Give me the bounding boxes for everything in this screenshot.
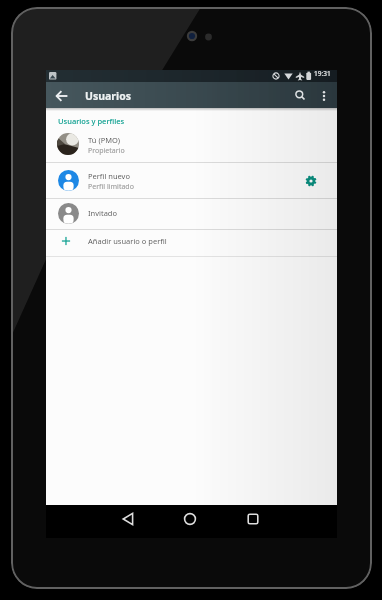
button[interactable]: Tú (PMO) bbox=[46, 126, 337, 162]
staticText: Usuarios y perfiles bbox=[58, 116, 125, 126]
button[interactable]: Perfil nuevo bbox=[46, 162, 337, 198]
button[interactable] bbox=[50, 84, 74, 108]
staticText: 19:31 bbox=[314, 69, 331, 78]
staticText: Perfil limitado bbox=[88, 182, 134, 192]
staticText: Invitado bbox=[88, 208, 117, 218]
staticText: Tú (PMO) bbox=[88, 135, 121, 145]
staticText: Perfil nuevo bbox=[88, 171, 130, 181]
button[interactable] bbox=[177, 506, 203, 532]
button[interactable]: Añadir usuario o perfil bbox=[46, 230, 337, 257]
staticText: Añadir usuario o perfil bbox=[88, 236, 167, 246]
staticText: Propietario bbox=[88, 146, 125, 156]
button[interactable] bbox=[240, 506, 266, 532]
button[interactable] bbox=[312, 84, 336, 108]
staticText: Usuarios bbox=[85, 89, 131, 103]
button[interactable] bbox=[300, 170, 322, 192]
button[interactable]: Invitado bbox=[46, 198, 337, 229]
button[interactable] bbox=[115, 506, 141, 532]
button[interactable] bbox=[289, 84, 313, 108]
